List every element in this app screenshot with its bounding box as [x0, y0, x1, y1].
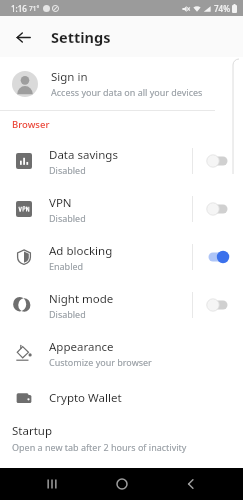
staticText: Ad blocking: [49, 243, 113, 259]
button[interactable]: Off: [205, 295, 231, 315]
staticText: Sign in: [51, 69, 88, 85]
staticText: Access your data on all your devices: [51, 86, 203, 98]
staticText: Disabled: [49, 212, 86, 224]
staticText: 74%: [214, 3, 230, 14]
button[interactable]: VPN: [0, 185, 243, 233]
button[interactable]: Crypto Wallet: [0, 377, 243, 419]
button[interactable]: Ad blocking: [0, 233, 243, 281]
button[interactable]: Recents: [35, 468, 69, 500]
button[interactable]: Data savings: [0, 137, 243, 185]
button[interactable]: Back: [174, 468, 208, 500]
button[interactable]: Off: [205, 199, 231, 219]
staticText: Disabled: [49, 308, 86, 320]
staticText: Browser: [12, 118, 50, 131]
staticText: Night mode: [49, 291, 114, 307]
button[interactable]: On: [205, 247, 231, 267]
staticText: Enabled: [49, 260, 84, 272]
button[interactable]: Sign in: [0, 57, 243, 110]
staticText: VPN: [49, 195, 72, 211]
staticText: Appearance: [49, 339, 114, 355]
staticText: 71°: [29, 4, 40, 13]
staticText: Data savings: [49, 147, 118, 163]
staticText: 1:16: [11, 3, 27, 14]
staticText: Crypto Wallet: [49, 390, 122, 406]
staticText: Settings: [51, 27, 111, 47]
staticText: Open a new tab after 2 hours of inactivi…: [12, 441, 187, 453]
button[interactable]: Home: [105, 468, 139, 500]
button[interactable]: Startup: [0, 419, 243, 453]
button[interactable]: Appearance: [0, 329, 243, 377]
staticText: Startup: [12, 423, 52, 439]
staticText: Customize your browser: [49, 356, 152, 368]
button[interactable]: Night mode: [0, 281, 243, 329]
button[interactable]: Off: [205, 151, 231, 171]
button[interactable]: Back: [10, 24, 36, 50]
staticText: Disabled: [49, 164, 86, 176]
